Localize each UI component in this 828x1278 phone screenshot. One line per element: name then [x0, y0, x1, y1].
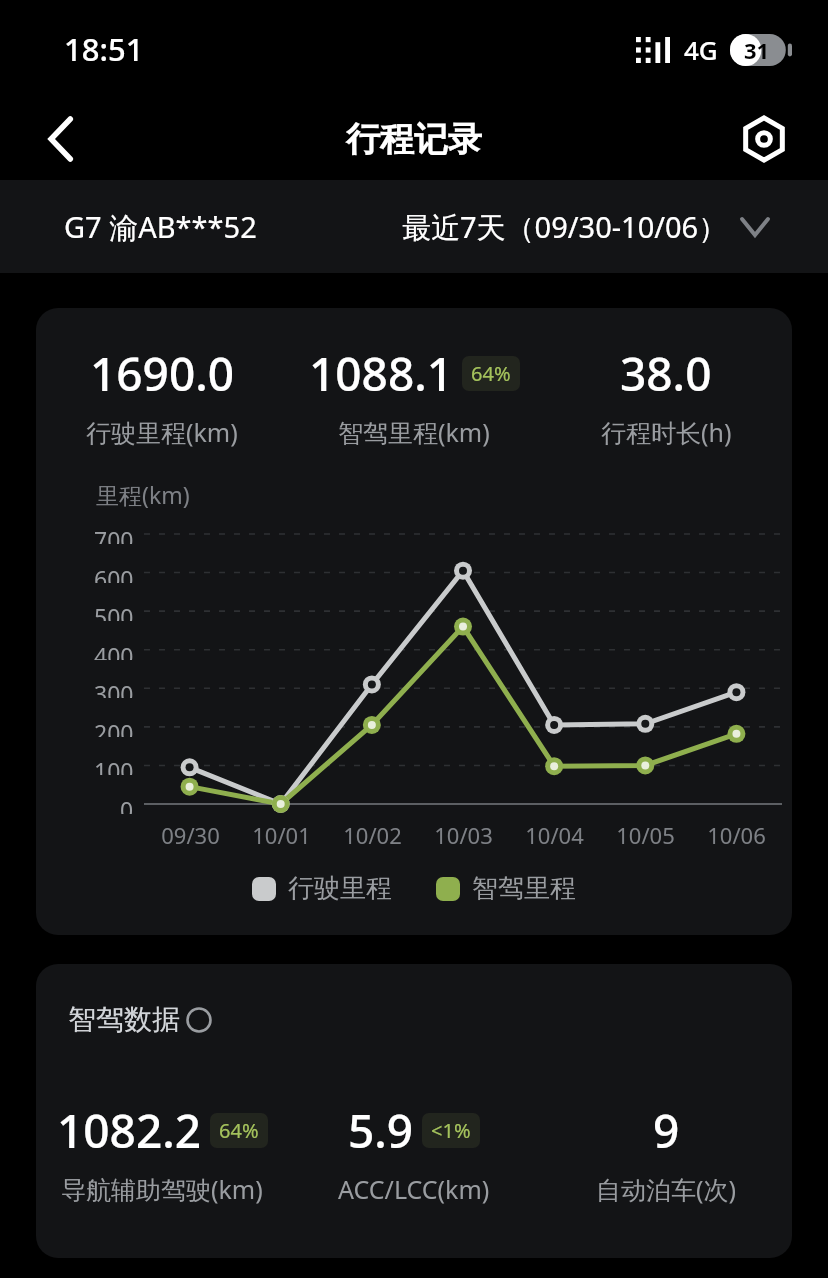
staticText: 10/03	[434, 820, 493, 850]
staticText: 10/05	[616, 820, 675, 850]
staticText: 里程(km)	[96, 479, 190, 510]
staticText: 300	[94, 678, 134, 698]
staticText: <1%	[431, 1117, 471, 1144]
button[interactable]: 智驾里程	[436, 872, 576, 905]
staticText: 9	[653, 1099, 680, 1162]
staticText: 200	[94, 717, 134, 737]
staticText: G7 渝AB***52	[64, 207, 257, 247]
button[interactable]: G7 渝AB***52	[64, 207, 257, 247]
staticText: 64%	[219, 1117, 259, 1144]
staticText: 10/06	[707, 820, 766, 850]
staticText: 1088.1	[309, 342, 454, 405]
staticText: 最近7天（09/30-10/06）	[402, 207, 728, 247]
staticText: 10/01	[252, 820, 311, 850]
staticText: 64%	[471, 360, 511, 387]
staticText: 09/30	[161, 820, 220, 850]
staticText: 38.0	[620, 342, 712, 405]
staticText: 10/02	[343, 820, 402, 850]
button[interactable]: 智驾数据	[36, 964, 792, 1258]
staticText: 自动泊车(次)	[596, 1172, 737, 1206]
staticText: 4G	[684, 32, 718, 67]
staticText: 行程时长(h)	[601, 415, 732, 449]
button[interactable]: 最近7天（09/30-10/06）	[402, 207, 768, 247]
staticText: 5.9	[348, 1099, 414, 1162]
staticText: 行驶里程(km)	[86, 415, 238, 449]
button[interactable]: 行驶里程	[252, 872, 392, 905]
staticText: 31	[744, 35, 770, 65]
staticText: 0	[120, 794, 134, 814]
button[interactable]: 1690.0	[36, 308, 792, 935]
staticText: 智驾里程	[472, 872, 576, 905]
staticText: 行程记录	[346, 118, 482, 161]
staticText: 400	[94, 640, 134, 660]
staticText: 500	[94, 601, 134, 621]
button[interactable]: 智驾数据	[68, 1002, 212, 1037]
staticText: 18:51	[64, 28, 144, 70]
staticText: 导航辅助驾驶(km)	[61, 1172, 263, 1206]
staticText: 1082.2	[57, 1099, 202, 1162]
staticText: 100	[94, 755, 134, 775]
staticText: 智驾里程(km)	[338, 415, 490, 449]
staticText: 10/04	[525, 820, 584, 850]
staticText: 智驾数据	[68, 1002, 180, 1037]
staticText: 600	[94, 563, 134, 583]
button[interactable]: Back	[26, 103, 98, 175]
button[interactable]: Settings	[728, 103, 800, 175]
staticText: ACC/LCC(km)	[338, 1172, 490, 1206]
other: Help	[186, 1007, 212, 1033]
staticText: 700	[94, 524, 134, 544]
staticText: 行驶里程	[288, 872, 392, 905]
staticText: 1690.0	[90, 342, 235, 405]
